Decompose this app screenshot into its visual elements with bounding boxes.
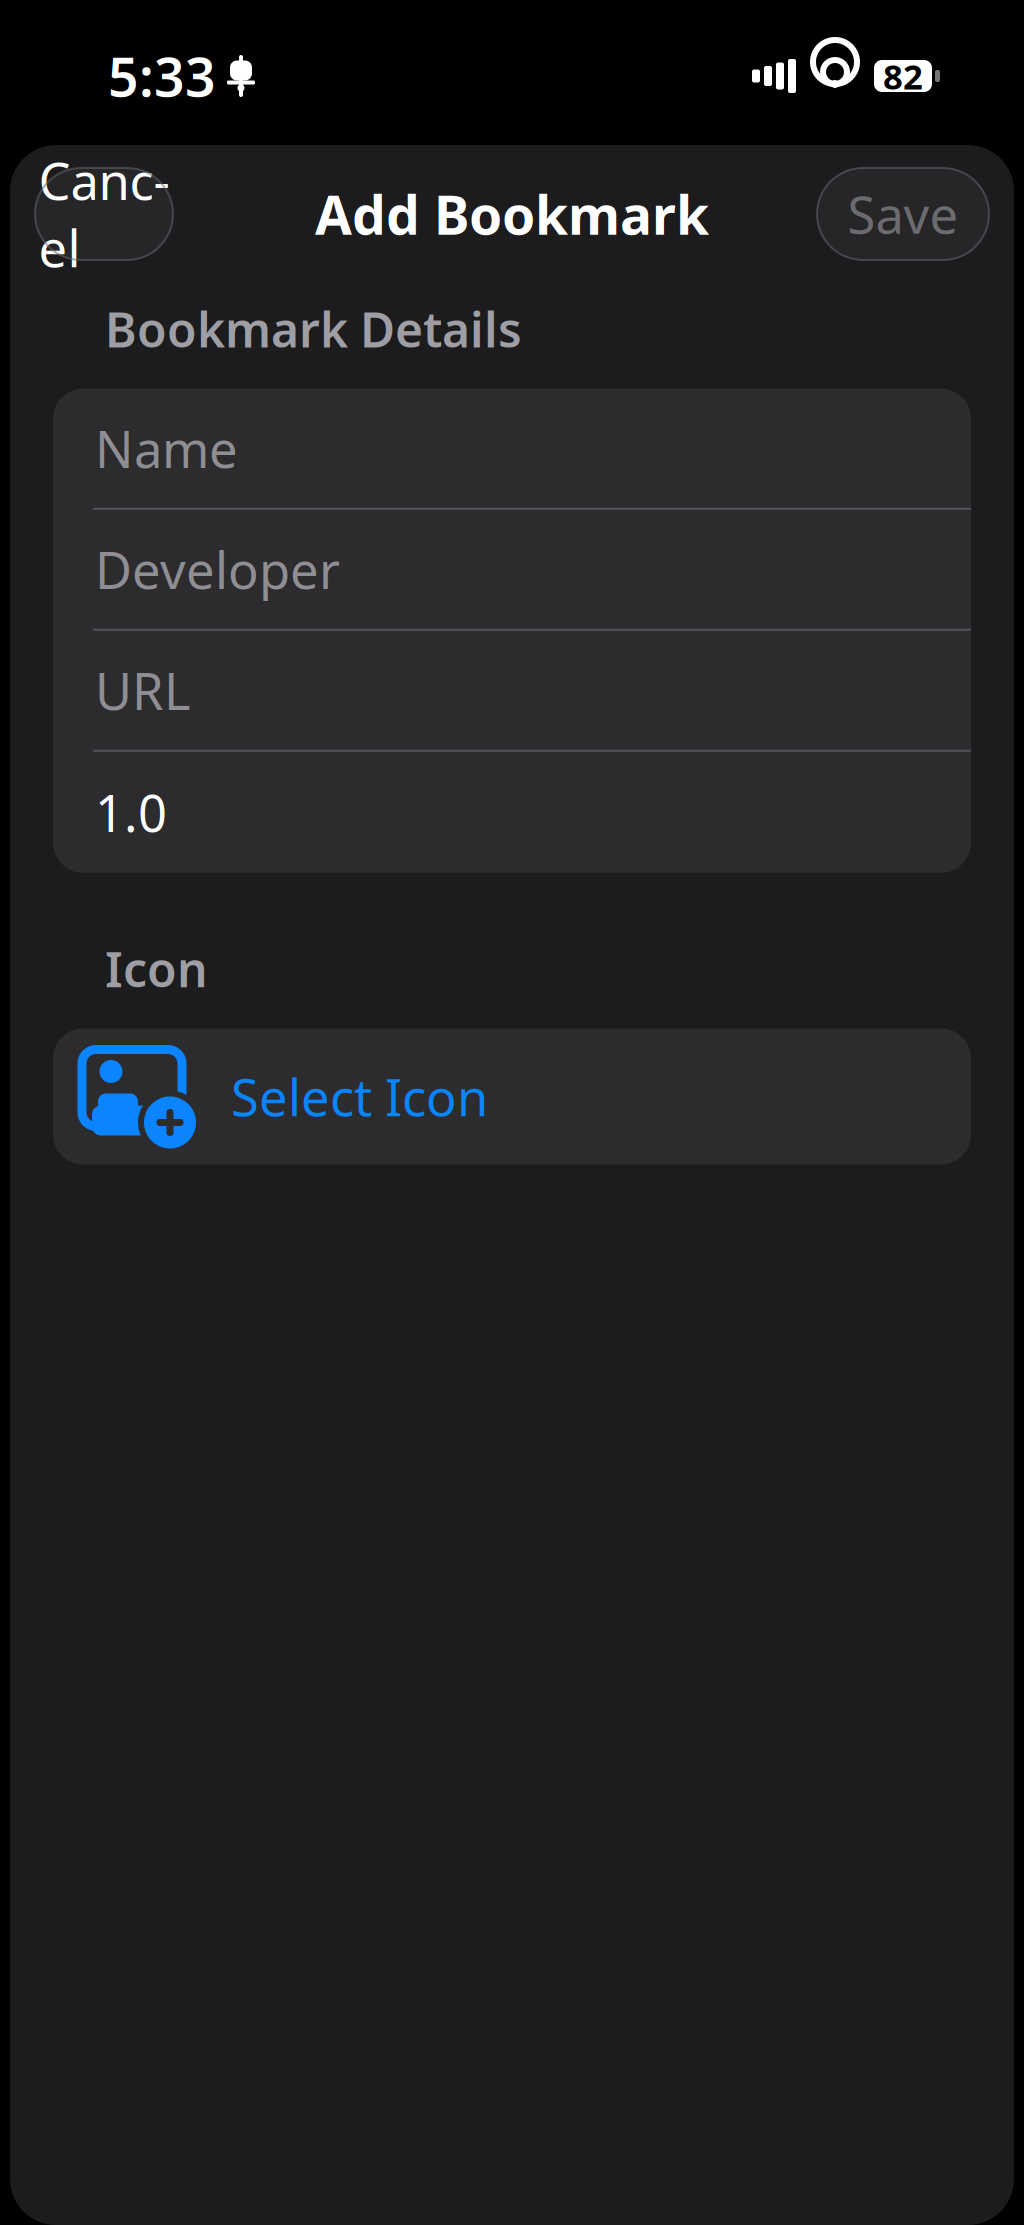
staticText: Select Icon [231, 1063, 488, 1130]
staticText: Developer [95, 536, 340, 603]
button[interactable]: Save [817, 168, 989, 260]
button[interactable]: Select Icon [53, 1028, 971, 1164]
staticText: 1.0 [95, 779, 167, 846]
staticText: Save [847, 180, 958, 248]
staticText: 5:33 [108, 41, 216, 111]
staticText: Icon [105, 937, 208, 1000]
staticText: URL [95, 657, 191, 724]
staticText: Add Bookmark [315, 179, 709, 249]
staticText: 82 [883, 53, 923, 99]
staticText: Bookmark Details [105, 297, 522, 361]
staticText: Name [95, 415, 238, 482]
button[interactable]: Cancel [35, 168, 173, 260]
staticText: Cancel [38, 147, 169, 281]
